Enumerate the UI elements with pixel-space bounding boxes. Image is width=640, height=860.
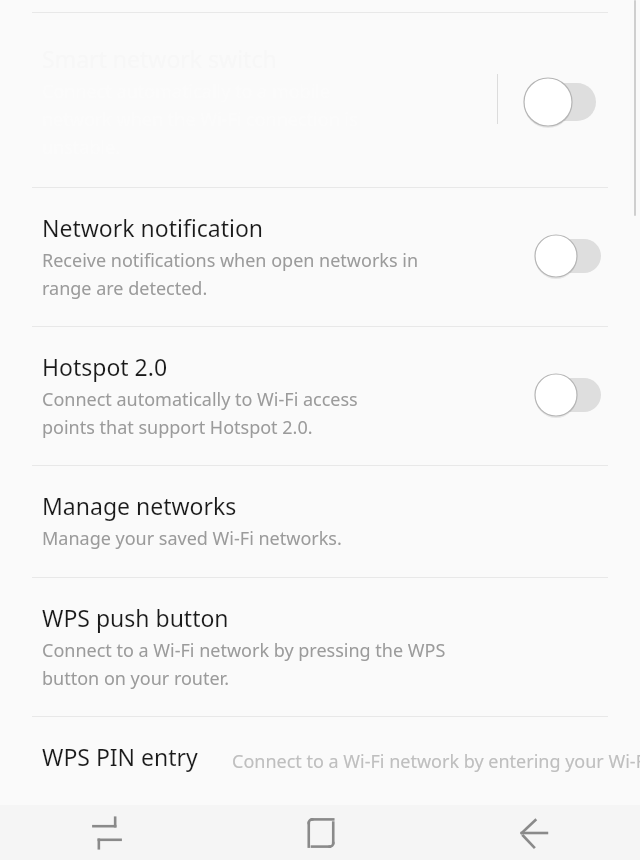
button[interactable]: Back (427, 805, 640, 860)
button[interactable]: Manage networks (0, 466, 640, 577)
staticText: Connect automatically to Wi-Fi access po… (42, 387, 358, 439)
staticText: WPS PIN entry (42, 741, 198, 772)
staticText: Manage networks (42, 490, 237, 521)
button[interactable]: Smart network switch (0, 13, 640, 187)
staticText: WPS push button (42, 602, 229, 633)
button[interactable]: WPS PIN entry (0, 717, 640, 777)
button[interactable]: Recent apps (0, 805, 214, 860)
staticText: Receive notifications when open networks… (42, 248, 419, 300)
staticText: Network notification (42, 212, 264, 243)
staticText: Connect to a Wi-Fi network by entering y… (232, 749, 640, 774)
button[interactable]: Hotspot 2.0 (0, 327, 640, 465)
staticText: Connect to a Wi-Fi network by pressing t… (42, 638, 446, 690)
button[interactable]: Network notification (0, 188, 640, 326)
button[interactable]: WPS push button (0, 578, 640, 716)
staticText: Manage your saved Wi-Fi networks. (42, 526, 342, 551)
button[interactable]: Home (214, 805, 427, 860)
staticText: Hotspot 2.0 (42, 351, 168, 382)
